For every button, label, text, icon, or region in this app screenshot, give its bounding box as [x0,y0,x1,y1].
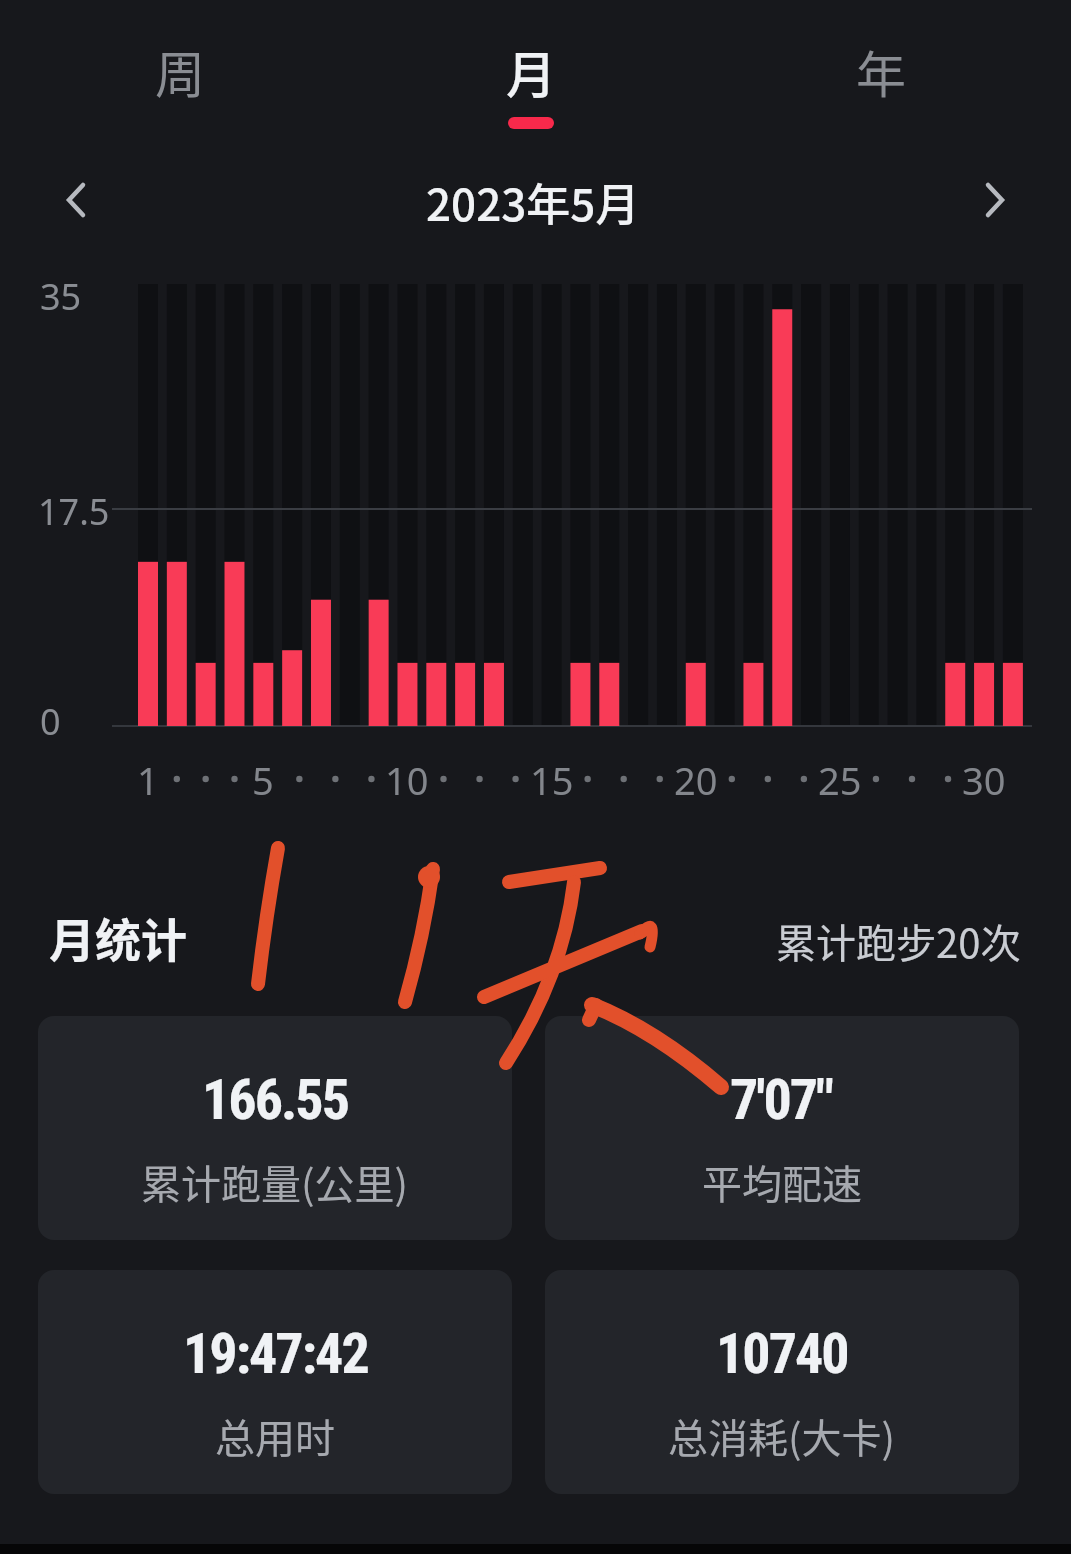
button[interactable] [951,160,1041,240]
staticText: 总消耗(大卡) [668,1407,896,1465]
button[interactable]: 7'07" [545,1016,1019,1240]
staticText: 年 [856,35,906,107]
staticText: 20 [674,754,718,804]
button[interactable]: 166.55 [38,1016,512,1240]
staticText: 累计跑步20次 [776,912,1021,968]
staticText: 10 [385,754,429,804]
staticText: 7'07" [731,1067,833,1133]
button[interactable]: 周 [110,26,250,116]
button[interactable]: 月 [461,26,601,116]
staticText: 5 [252,754,274,804]
staticText: 平均配速 [702,1153,862,1211]
staticText: 月 [506,35,556,107]
button[interactable]: 10740 [545,1270,1019,1494]
button[interactable]: 19:47:42 [38,1270,512,1494]
staticText: 总用时 [215,1407,335,1465]
staticText: 35 [40,272,82,316]
staticText: 0 [40,697,61,741]
staticText: 15 [530,754,574,804]
staticText: 2023年5月 [426,170,640,230]
staticText: 25 [818,754,862,804]
staticText: 19:47:42 [183,1321,368,1387]
staticText: 166.55 [202,1067,348,1133]
staticText: 17.5 [38,487,110,531]
staticText: 周 [155,35,205,107]
staticText: 累计跑量(公里) [141,1153,409,1211]
button[interactable] [30,160,120,240]
staticText: 月统计 [49,904,187,964]
button[interactable]: 年 [811,26,951,116]
staticText: 1 [137,754,159,804]
staticText: 10740 [716,1321,848,1387]
staticText: 30 [962,754,1006,804]
